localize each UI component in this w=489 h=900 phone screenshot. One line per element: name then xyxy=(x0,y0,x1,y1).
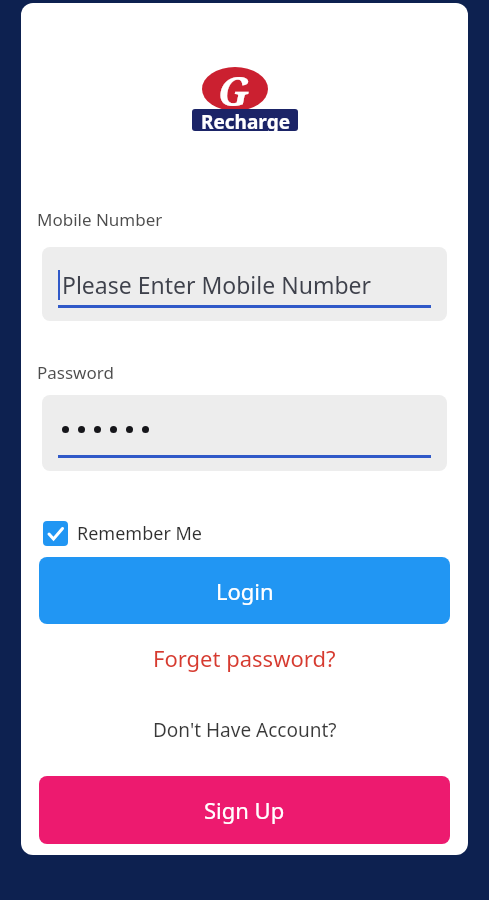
staticText: Mobile Number xyxy=(37,208,163,231)
button[interactable] xyxy=(42,395,447,471)
staticText: Forget password? xyxy=(153,643,336,673)
button[interactable]: Remember Me xyxy=(43,521,202,546)
button[interactable]: Sign Up xyxy=(39,776,450,844)
button[interactable]: Please Enter Mobile Number xyxy=(42,247,447,321)
staticText: Recharge xyxy=(201,109,290,131)
staticText: Sign Up xyxy=(204,795,285,825)
button[interactable]: Forget password? xyxy=(21,643,468,673)
staticText: Login xyxy=(216,576,274,606)
staticText: G xyxy=(218,63,250,117)
staticText: Remember Me xyxy=(77,521,202,546)
staticText: Don't Have Account? xyxy=(153,717,337,743)
staticText: Please Enter Mobile Number xyxy=(62,269,372,300)
button[interactable]: Login xyxy=(39,557,450,624)
staticText: Password xyxy=(37,361,114,384)
